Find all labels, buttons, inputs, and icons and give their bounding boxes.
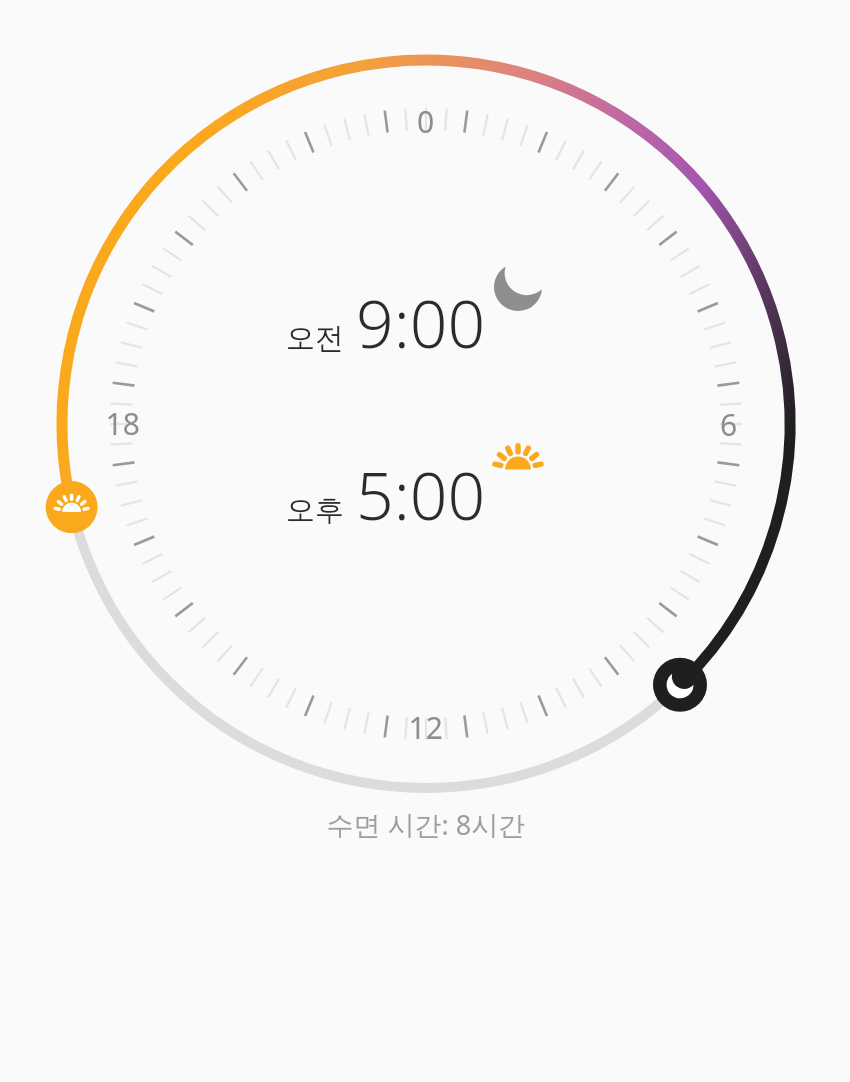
- button[interactable]: Wake up time handle: [55, 471, 107, 523]
- button[interactable]: Bedtime handle: [646, 638, 700, 692]
